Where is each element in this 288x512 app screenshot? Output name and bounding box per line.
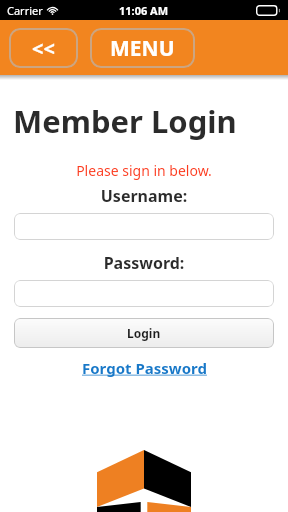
staticText: Member Login — [13, 100, 237, 142]
staticText: Please sign in below. — [0, 161, 288, 180]
button[interactable]: Login — [14, 318, 274, 348]
button[interactable]: Menu — [90, 28, 195, 68]
button[interactable]: Back — [9, 28, 78, 68]
staticText: << — [32, 35, 55, 62]
button[interactable]: Text field — [14, 280, 274, 307]
staticText: Carrier — [7, 3, 43, 18]
staticText: 11:06 AM — [119, 3, 169, 18]
button[interactable]: Text field — [14, 213, 274, 240]
staticText: MENU — [110, 34, 175, 63]
staticText: Username: — [0, 185, 288, 207]
staticText: Forgot Password — [82, 358, 207, 378]
staticText: Password: — [0, 252, 288, 274]
button[interactable]: Forgot Password — [82, 358, 207, 378]
staticText: Login — [127, 325, 161, 341]
